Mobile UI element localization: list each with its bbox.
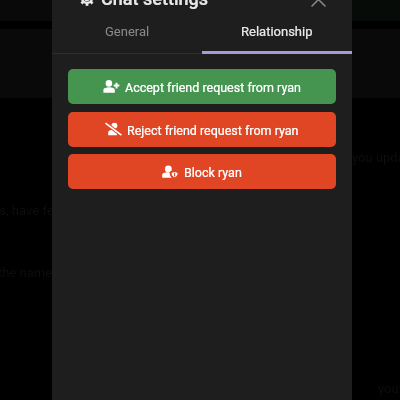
staticText: Accept friend request from ryan [125, 80, 301, 95]
button[interactable]: Reject friend request from ryan [68, 112, 336, 147]
staticText: you updat [352, 150, 400, 165]
staticText: the name " [0, 265, 60, 280]
staticText: you [378, 381, 399, 396]
button[interactable]: Block ryan [68, 154, 336, 189]
staticText: General [105, 24, 150, 39]
button[interactable]: Relationship [202, 10, 352, 52]
staticText: Block ryan [184, 165, 242, 180]
staticText: Relationship [241, 24, 313, 39]
staticText: Chat settings [101, 0, 209, 9]
button[interactable]: Close dialog [304, 0, 332, 12]
staticText: Reject friend request from ryan [127, 123, 299, 138]
button[interactable]: General [52, 10, 202, 52]
button[interactable]: Accept friend request from ryan [68, 69, 336, 104]
staticText: gs, have fe [0, 203, 54, 218]
